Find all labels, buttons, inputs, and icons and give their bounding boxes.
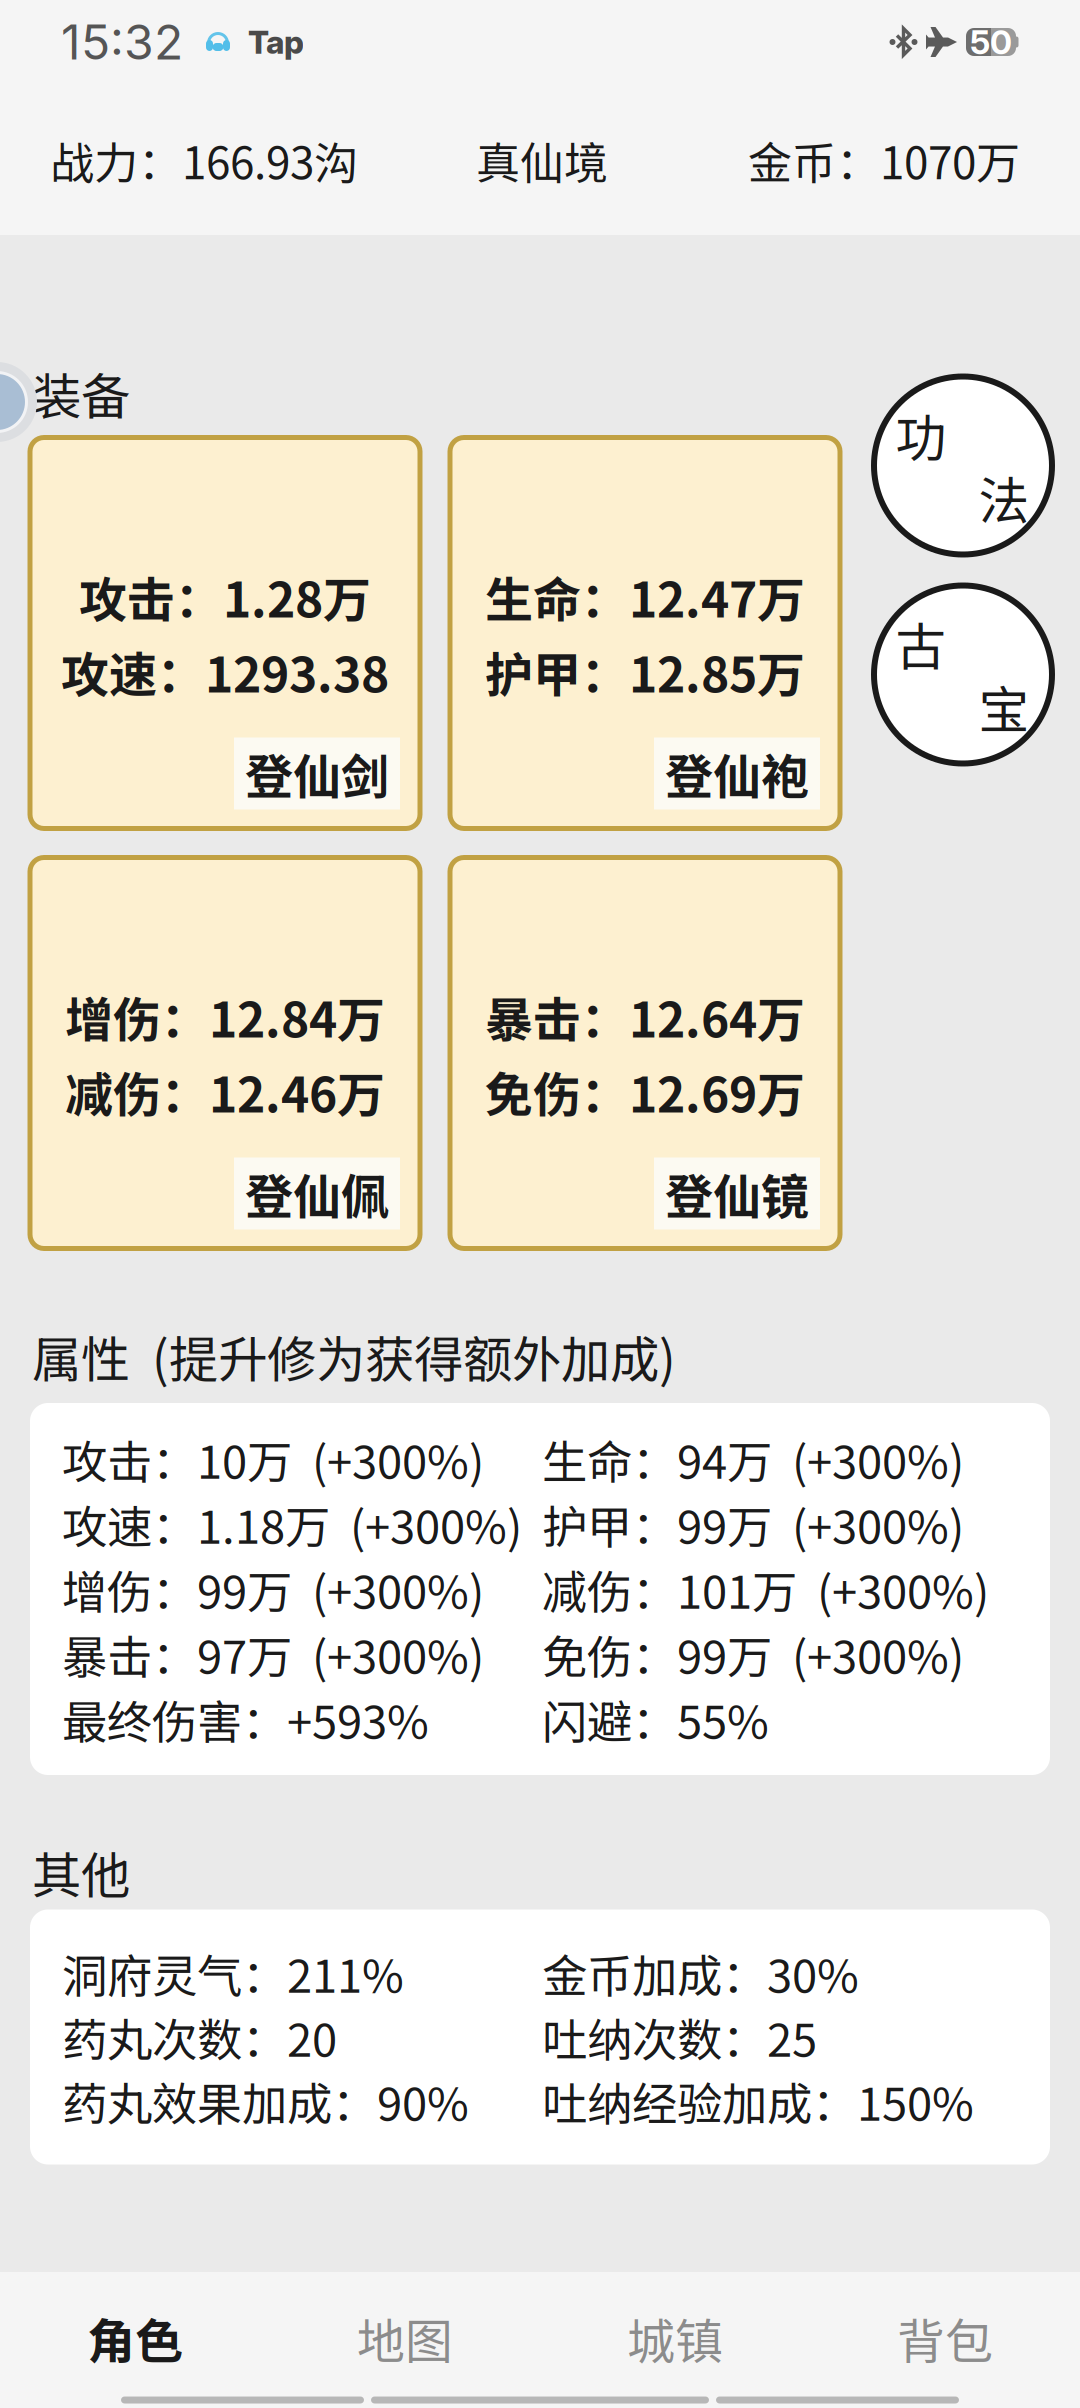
button[interactable]: 功	[874, 376, 1052, 554]
staticText: 属性 (提升修为获得额外加成)	[32, 1320, 676, 1392]
staticText: 登仙镜	[665, 1159, 809, 1228]
button[interactable]: 增伤：12.84万	[30, 857, 420, 1248]
staticText: 登仙袍	[665, 739, 809, 808]
staticText: 药丸次数：20	[62, 2004, 337, 2070]
staticText: 金币加成：30%	[542, 1940, 859, 2006]
button[interactable]: 背包	[810, 2282, 1080, 2394]
staticText: 生命：12.47万	[485, 562, 805, 631]
staticText: 法	[978, 461, 1029, 534]
button[interactable]: 地图	[270, 2282, 540, 2394]
staticText: 暴击：12.64万	[485, 982, 805, 1051]
staticText: 背包	[897, 2303, 993, 2373]
staticText: 暴击：97万 (+300%)	[62, 1621, 484, 1687]
staticText: 护甲：99万 (+300%)	[542, 1491, 964, 1557]
staticText: 宝	[978, 670, 1029, 743]
staticText: 地图	[357, 2303, 453, 2373]
staticText: 金币：1070万	[748, 128, 1020, 192]
staticText: 功	[895, 398, 946, 471]
staticText: 角色	[87, 2303, 183, 2373]
staticText: 装备	[32, 357, 130, 429]
staticText: 登仙剑	[245, 739, 389, 808]
staticText: 其他	[32, 1836, 130, 1908]
staticText: 减伤：12.46万	[65, 1057, 385, 1126]
staticText: 攻击：1.28万	[79, 562, 371, 631]
staticText: 免伤：12.69万	[485, 1057, 805, 1126]
staticText: 减伤：101万 (+300%)	[542, 1556, 989, 1622]
staticText: 战力：166.93沟	[50, 128, 358, 192]
staticText: 洞府灵气：211%	[62, 1940, 404, 2006]
staticText: 增伤：12.84万	[65, 982, 385, 1051]
staticText: 吐纳经验加成：150%	[542, 2068, 974, 2134]
staticText: 城镇	[627, 2303, 723, 2373]
staticText: 护甲：12.85万	[485, 637, 805, 706]
staticText: 攻击：10万 (+300%)	[62, 1426, 484, 1492]
staticText: 生命：94万 (+300%)	[542, 1426, 964, 1492]
button[interactable]: 角色	[0, 2282, 270, 2394]
staticText: 攻速：1293.38	[61, 637, 389, 706]
button[interactable]: 生命：12.47万	[450, 437, 840, 828]
staticText: 增伤：99万 (+300%)	[62, 1556, 484, 1622]
staticText: 古	[895, 607, 946, 680]
staticText: 最终伤害：+593%	[62, 1686, 429, 1752]
staticText: 15:32	[61, 13, 183, 71]
staticText: 登仙佩	[245, 1159, 389, 1228]
staticText: 攻速：1.18万 (+300%)	[62, 1491, 522, 1557]
button[interactable]: 攻击：1.28万	[30, 437, 420, 828]
button[interactable]: 古	[874, 585, 1052, 763]
staticText: 闪避：55%	[542, 1686, 769, 1752]
button[interactable]: 城镇	[540, 2282, 810, 2394]
staticText: 50	[970, 22, 1012, 62]
button[interactable]: 暴击：12.64万	[450, 857, 840, 1248]
staticText: Tap	[248, 23, 304, 61]
staticText: 免伤：99万 (+300%)	[542, 1621, 964, 1687]
staticText: 吐纳次数：25	[542, 2004, 817, 2070]
staticText: 真仙境	[476, 128, 608, 192]
staticText: 药丸效果加成：90%	[62, 2068, 469, 2134]
